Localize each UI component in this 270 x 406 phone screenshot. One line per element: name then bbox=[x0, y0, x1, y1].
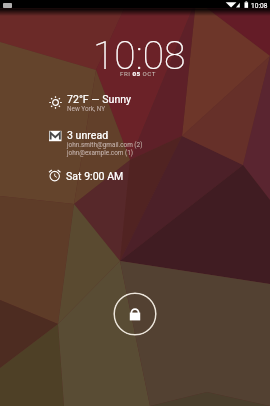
staticText: john@example.com (1) bbox=[67, 149, 134, 157]
button[interactable]: 3 unread bbox=[49, 128, 184, 157]
staticText: 3 unread bbox=[67, 129, 109, 141]
staticText: New York, NY bbox=[67, 105, 106, 113]
staticText: FRI 05 OCT bbox=[120, 70, 156, 77]
staticText: Sat 9:00 AM bbox=[66, 170, 124, 182]
staticText: 72°F — Sunny bbox=[67, 93, 132, 105]
button[interactable]: Sat 9:00 AM bbox=[48, 168, 183, 182]
staticText: 10:08 bbox=[93, 33, 186, 79]
button[interactable]: 72°F — Sunny bbox=[49, 92, 184, 113]
staticText: john.smith@gmail.com (2) bbox=[67, 141, 143, 149]
button[interactable]: Unlock bbox=[113, 292, 157, 336]
staticText: 10:08 bbox=[251, 2, 268, 10]
